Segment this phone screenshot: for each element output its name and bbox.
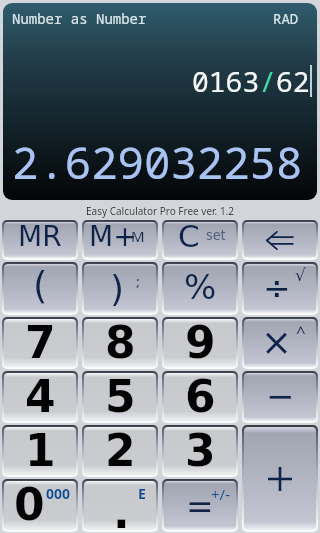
button[interactable]: 3 bbox=[164, 427, 236, 475]
button[interactable]: C bbox=[164, 222, 236, 258]
staticText: M bbox=[131, 226, 145, 246]
staticText: ) bbox=[110, 268, 125, 310]
button[interactable]: ( bbox=[4, 264, 76, 313]
button[interactable]: 0 bbox=[4, 481, 76, 530]
staticText: 1 bbox=[25, 427, 56, 473]
staticText: ^ bbox=[296, 320, 306, 343]
button[interactable]: % bbox=[164, 264, 236, 313]
button[interactable]: MR bbox=[4, 222, 76, 258]
button[interactable]: . bbox=[84, 481, 156, 530]
staticText: C bbox=[178, 222, 200, 254]
staticText: Number as Number bbox=[12, 9, 147, 28]
staticText: 5 bbox=[105, 373, 136, 419]
staticText: 3 bbox=[185, 427, 216, 473]
staticText: 7 bbox=[25, 319, 56, 365]
staticText: ( bbox=[33, 265, 48, 308]
button[interactable]: 8 bbox=[84, 319, 156, 367]
staticText: MR bbox=[18, 222, 62, 253]
staticText: ÷ bbox=[263, 269, 291, 307]
button[interactable]: Multiply bbox=[244, 319, 316, 367]
staticText: M+ bbox=[89, 222, 137, 253]
staticText: 2.629032258 bbox=[12, 132, 303, 192]
staticText: − bbox=[266, 376, 295, 416]
button[interactable]: Minus bbox=[244, 373, 316, 421]
staticText: RAD bbox=[273, 9, 299, 28]
staticText: 8 bbox=[105, 319, 136, 365]
staticText: 0163/62 bbox=[192, 62, 310, 100]
button[interactable]: Equals bbox=[164, 481, 236, 530]
staticText: 0 bbox=[14, 481, 45, 528]
staticText: E bbox=[138, 484, 146, 503]
staticText: × bbox=[261, 321, 293, 364]
button[interactable]: Plus bbox=[244, 427, 316, 530]
button[interactable]: 4 bbox=[4, 373, 76, 421]
staticText: 9 bbox=[185, 319, 216, 365]
staticText: ; bbox=[136, 272, 140, 290]
staticText: 2 bbox=[105, 427, 136, 473]
button[interactable]: 5 bbox=[84, 373, 156, 421]
button[interactable]: Backspace bbox=[244, 222, 316, 258]
staticText: 6 bbox=[185, 373, 216, 419]
button[interactable]: 7 bbox=[4, 319, 76, 367]
button[interactable]: 2 bbox=[84, 427, 156, 475]
button[interactable]: 6 bbox=[164, 373, 236, 421]
staticText: % bbox=[184, 267, 217, 307]
staticText: . bbox=[113, 487, 130, 530]
staticText: +/- bbox=[211, 484, 230, 504]
button[interactable]: 1 bbox=[4, 427, 76, 475]
button[interactable]: Divide bbox=[244, 264, 316, 313]
button[interactable]: ) bbox=[84, 264, 156, 313]
button[interactable]: M+ bbox=[84, 222, 156, 258]
button[interactable]: 9 bbox=[164, 319, 236, 367]
staticText: = bbox=[186, 487, 214, 525]
staticText: 4 bbox=[25, 373, 56, 419]
staticText: set bbox=[206, 225, 226, 244]
staticText: Easy Calculator Pro Free ver. 1.2 bbox=[86, 204, 235, 218]
staticText: 000 bbox=[46, 484, 71, 503]
staticText: √ bbox=[295, 265, 306, 285]
